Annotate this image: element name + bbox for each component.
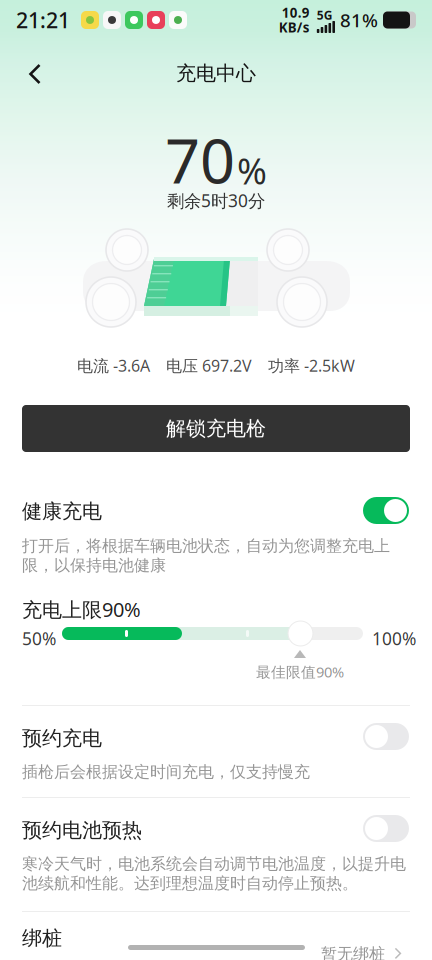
staticText: 81% — [340, 8, 378, 32]
staticText: 预约电池预热 — [22, 818, 142, 843]
staticText: 10.9 — [282, 4, 310, 21]
staticText: 插枪后会根据设定时间充电，仅支持慢充 — [22, 762, 310, 782]
staticText: 5G — [317, 7, 333, 23]
button[interactable]: 解锁充电枪 — [22, 405, 410, 452]
staticText: 50% — [22, 627, 56, 650]
staticText: 100% — [372, 627, 416, 650]
staticText: KB/s — [279, 18, 310, 36]
staticText: 暂无绑桩 — [321, 944, 385, 960]
staticText: 绑桩 — [22, 926, 62, 951]
staticText: 寒冷天气时，电池系统会自动调节电池温度，以提升电池续航和性能。达到理想温度时自动… — [22, 854, 406, 893]
staticText: 充电中心 — [176, 61, 256, 86]
button[interactable]: 绑桩 — [22, 926, 410, 960]
staticText: 打开后，将根据车辆电池状态，自动为您调整充电上限，以保持电池健康 — [22, 536, 390, 575]
staticText: 电流 -3.6A — [77, 355, 150, 376]
staticText: 70 — [165, 119, 235, 200]
staticText: 健康充电 — [22, 499, 102, 524]
button[interactable]: 预约电池预热 — [363, 815, 409, 842]
staticText: 充电上限90% — [22, 596, 141, 623]
staticText: 功率 -2.5kW — [268, 355, 355, 376]
staticText: 剩余5时30分 — [167, 189, 265, 212]
button[interactable]: 返回 — [12, 51, 58, 97]
staticText: 电压 697.2V — [166, 355, 252, 376]
button[interactable]: 健康充电 — [363, 497, 409, 524]
staticText: 最佳限值90% — [256, 662, 344, 681]
staticText: 解锁充电枪 — [166, 416, 266, 441]
staticText: 21:21 — [16, 6, 70, 34]
staticText: 预约充电 — [22, 726, 102, 751]
staticText: % — [237, 147, 267, 194]
button[interactable]: 预约充电 — [363, 723, 409, 750]
